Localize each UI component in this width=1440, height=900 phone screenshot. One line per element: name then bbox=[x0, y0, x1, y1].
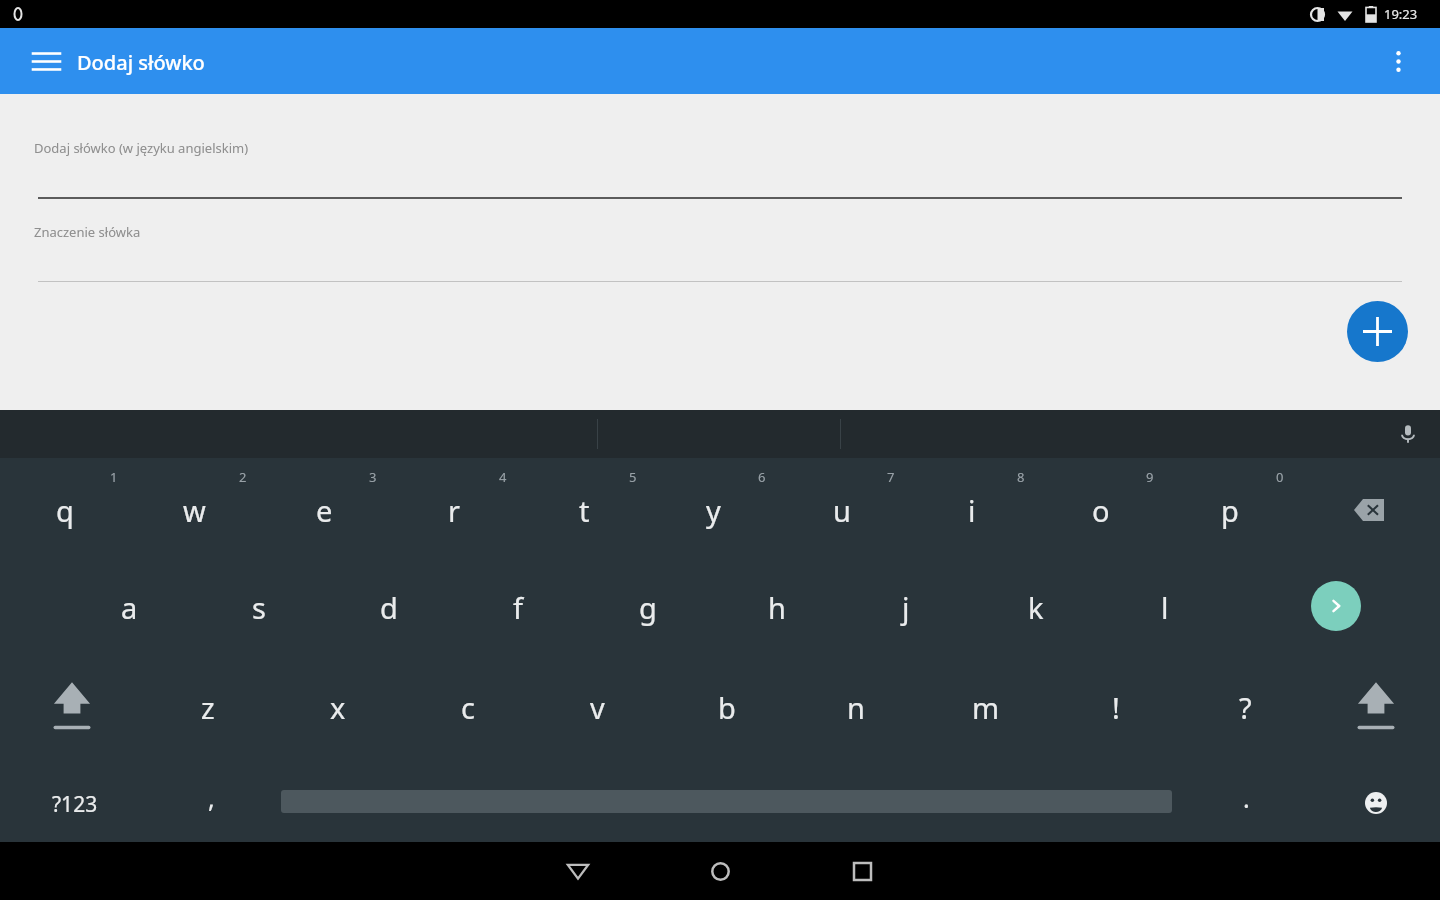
staticText: j bbox=[902, 588, 910, 627]
button[interactable]: h bbox=[715, 563, 839, 651]
staticText: q bbox=[56, 491, 74, 530]
staticText: 6 bbox=[758, 468, 766, 486]
staticText: p bbox=[1221, 491, 1239, 530]
button[interactable]: ?123 bbox=[20, 778, 130, 830]
button[interactable]: n bbox=[794, 663, 918, 751]
button[interactable]: w bbox=[132, 466, 256, 554]
button[interactable]: ! bbox=[1054, 663, 1178, 751]
button[interactable]: y bbox=[651, 466, 775, 554]
staticText: n bbox=[847, 688, 865, 727]
staticText: 4 bbox=[499, 468, 507, 486]
button[interactable]: u bbox=[780, 466, 904, 554]
staticText: 1 bbox=[110, 468, 118, 486]
staticText: ?123 bbox=[52, 790, 98, 819]
staticText: o bbox=[1092, 491, 1110, 530]
button[interactable]: v bbox=[535, 663, 659, 751]
staticText: x bbox=[330, 688, 346, 727]
staticText: a bbox=[121, 588, 138, 627]
staticText: u bbox=[833, 491, 851, 530]
staticText: 5 bbox=[629, 468, 637, 486]
staticText: b bbox=[718, 688, 736, 727]
button[interactable]: Voice input bbox=[1388, 414, 1428, 454]
button[interactable]: r bbox=[392, 466, 516, 554]
staticText: 7 bbox=[887, 468, 895, 486]
staticText: 2 bbox=[239, 468, 247, 486]
button[interactable]: o bbox=[1039, 466, 1163, 554]
staticText: d bbox=[380, 588, 398, 627]
button[interactable]: g bbox=[586, 563, 710, 651]
button[interactable]: ? bbox=[1183, 663, 1307, 751]
staticText: , bbox=[208, 781, 215, 815]
button[interactable]: i bbox=[910, 466, 1034, 554]
staticText: 9 bbox=[1146, 468, 1154, 486]
button[interactable]: q bbox=[3, 466, 127, 554]
staticText: ! bbox=[1112, 688, 1120, 727]
button[interactable]: d bbox=[327, 563, 451, 651]
button[interactable]: f bbox=[456, 563, 580, 651]
button[interactable]: e bbox=[262, 466, 386, 554]
staticText: s bbox=[252, 588, 266, 627]
button[interactable]: j bbox=[844, 563, 968, 651]
staticText: w bbox=[183, 491, 206, 530]
staticText: Znaczenie słówka bbox=[34, 223, 141, 241]
staticText: h bbox=[768, 588, 786, 627]
staticText: t bbox=[579, 491, 590, 530]
button[interactable]: Shift bbox=[17, 663, 127, 751]
staticText: i bbox=[968, 491, 976, 530]
staticText: k bbox=[1028, 588, 1044, 627]
staticText: ? bbox=[1239, 688, 1252, 727]
button[interactable]: Back bbox=[505, 842, 651, 900]
button[interactable]: Backspace bbox=[1319, 470, 1419, 550]
button[interactable]: t bbox=[522, 466, 646, 554]
staticText: 19:23 bbox=[1384, 5, 1418, 23]
button[interactable]: Enter bbox=[1311, 581, 1361, 631]
staticText: Dodaj słówko bbox=[77, 49, 205, 76]
button[interactable]: m bbox=[924, 663, 1048, 751]
staticText: y bbox=[706, 491, 721, 530]
staticText: 3 bbox=[369, 468, 377, 486]
button[interactable]: Period bbox=[1220, 778, 1272, 830]
button[interactable]: s bbox=[197, 563, 321, 651]
staticText: . bbox=[1243, 781, 1250, 815]
button[interactable]: Recent apps bbox=[789, 842, 935, 900]
staticText: e bbox=[316, 491, 333, 530]
staticText: c bbox=[461, 688, 475, 727]
button[interactable]: Add word bbox=[1347, 301, 1408, 362]
staticText: v bbox=[590, 688, 605, 727]
staticText: z bbox=[201, 688, 215, 727]
staticText: f bbox=[513, 588, 523, 627]
button[interactable]: Home bbox=[651, 842, 789, 900]
button[interactable]: Open navigation drawer bbox=[20, 35, 72, 87]
staticText: g bbox=[639, 588, 657, 627]
staticText: l bbox=[1161, 588, 1169, 627]
button[interactable]: b bbox=[665, 663, 789, 751]
button[interactable]: Emoji bbox=[1353, 780, 1399, 826]
button[interactable]: l bbox=[1103, 563, 1227, 651]
button[interactable]: Comma bbox=[185, 778, 237, 830]
button[interactable]: c bbox=[406, 663, 530, 751]
button[interactable]: k bbox=[974, 563, 1098, 651]
button[interactable]: p bbox=[1168, 466, 1292, 554]
staticText: r bbox=[448, 491, 460, 530]
button[interactable]: More options bbox=[1374, 37, 1422, 85]
button[interactable]: a bbox=[67, 563, 191, 651]
button[interactable]: z bbox=[146, 663, 270, 751]
button[interactable]: x bbox=[276, 663, 400, 751]
staticText: 8 bbox=[1017, 468, 1025, 486]
staticText: m bbox=[972, 688, 1000, 727]
staticText: 0 bbox=[1276, 468, 1284, 486]
button[interactable]: Shift bbox=[1321, 663, 1431, 751]
staticText: Dodaj słówko (w języku angielskim) bbox=[34, 139, 249, 157]
